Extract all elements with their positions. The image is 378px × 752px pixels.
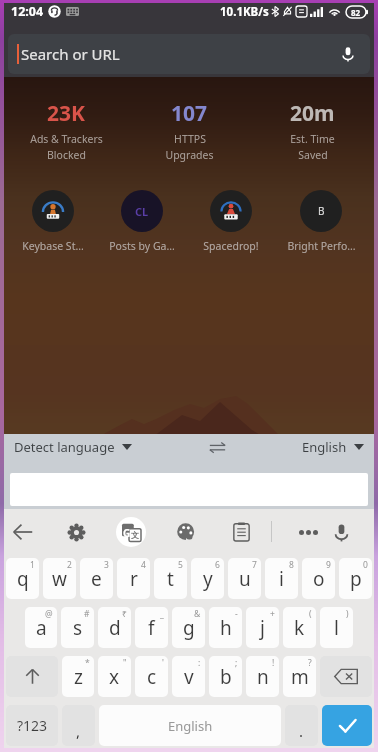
button[interactable]: s	[61, 607, 94, 648]
button[interactable]: b	[209, 656, 242, 697]
staticText: 107	[171, 99, 208, 128]
staticText: English	[168, 717, 213, 735]
staticText: t	[167, 566, 174, 592]
staticText: l	[334, 615, 339, 641]
button[interactable]: g	[172, 607, 205, 648]
button[interactable]: Clipboard	[221, 512, 261, 552]
button[interactable]: CL	[97, 190, 186, 253]
staticText: 2	[67, 559, 72, 571]
button[interactable]: j	[246, 607, 279, 648]
staticText: )	[346, 608, 349, 620]
staticText: #	[84, 608, 90, 620]
button[interactable]: Translate	[116, 517, 146, 547]
staticText: 12:04	[11, 3, 44, 20]
staticText: ?123	[17, 716, 48, 735]
button[interactable]: 107	[128, 99, 251, 162]
button[interactable]: t	[154, 558, 187, 599]
button[interactable]: Settings	[56, 512, 96, 552]
staticText: q	[17, 566, 29, 592]
staticText: 1	[30, 559, 35, 571]
button[interactable]: ,	[62, 705, 95, 746]
staticText: 文	[131, 530, 139, 540]
button[interactable]: ?123	[6, 705, 58, 746]
staticText: ?	[308, 657, 312, 669]
button[interactable]: a	[25, 607, 57, 648]
staticText: Keybase St…	[22, 239, 84, 253]
staticText: h	[220, 615, 232, 641]
button[interactable]: p	[339, 558, 372, 599]
button[interactable]: English	[99, 705, 281, 746]
button[interactable]: r	[117, 558, 150, 599]
button[interactable]: English	[302, 438, 364, 456]
button[interactable]: w	[43, 558, 76, 599]
button[interactable]: q	[6, 558, 39, 599]
button[interactable]: Backspace	[320, 656, 372, 697]
staticText: @	[45, 608, 53, 620]
staticText: English	[302, 438, 347, 456]
staticText: o	[313, 566, 325, 592]
button[interactable]: k	[283, 607, 316, 648]
staticText: (	[309, 608, 312, 620]
button[interactable]: l	[320, 607, 353, 648]
staticText: Search or URL	[21, 44, 120, 64]
button[interactable]: u	[228, 558, 261, 599]
button[interactable]: .	[285, 705, 318, 746]
button[interactable]: v	[172, 656, 205, 697]
button[interactable]: x	[98, 656, 131, 697]
button[interactable]: Shift	[6, 656, 58, 697]
button[interactable]: f	[135, 607, 168, 648]
button[interactable]: Back	[3, 512, 43, 552]
button[interactable]: y	[191, 558, 224, 599]
button[interactable]: d	[98, 607, 131, 648]
button[interactable]: Voice search	[330, 36, 366, 72]
button[interactable]: i	[265, 558, 298, 599]
staticText: m	[291, 664, 309, 690]
button[interactable]: Swap languages	[205, 435, 229, 459]
staticText: Est. Time	[290, 132, 335, 146]
button[interactable]: Search or URL	[8, 34, 370, 74]
button[interactable]: More options	[288, 512, 328, 552]
staticText: 3	[104, 559, 109, 571]
button[interactable]: Enter	[322, 705, 372, 746]
staticText: Ads & Trackers	[30, 132, 103, 146]
staticText: HTTPS	[174, 132, 206, 146]
staticText: ₹	[122, 608, 127, 620]
staticText: r	[130, 566, 138, 592]
button[interactable]: Theme	[166, 512, 206, 552]
staticText: 4	[141, 559, 146, 571]
staticText: u	[239, 566, 251, 592]
button[interactable]: 23K	[4, 99, 128, 162]
staticText: f	[148, 615, 155, 641]
staticText: w	[52, 566, 67, 592]
staticText: 0	[363, 559, 368, 571]
button[interactable]: Spacedrop!	[186, 190, 276, 253]
button[interactable]: B	[276, 190, 366, 253]
staticText: b	[220, 664, 232, 690]
button[interactable]: e	[80, 558, 113, 599]
staticText: Posts by Ga…	[109, 239, 175, 253]
staticText: +	[270, 608, 275, 620]
button[interactable]: Keybase St…	[8, 190, 97, 253]
button[interactable]: z	[62, 656, 94, 697]
button[interactable]: 20m	[251, 99, 374, 162]
staticText: Saved	[298, 148, 328, 162]
button[interactable]: c	[135, 656, 168, 697]
button[interactable]: Voice input	[321, 512, 361, 552]
staticText: i	[279, 566, 284, 592]
staticText: 6	[215, 559, 220, 571]
staticText: Blocked	[47, 148, 86, 162]
staticText: k	[294, 615, 305, 641]
staticText: _	[160, 608, 164, 620]
button[interactable]: Detect language	[14, 438, 132, 456]
button[interactable]: m	[283, 656, 316, 697]
button[interactable]: n	[246, 656, 279, 697]
button[interactable]: o	[302, 558, 335, 599]
button[interactable]: h	[209, 607, 242, 648]
staticText: -	[235, 608, 238, 620]
staticText: 82	[351, 7, 361, 18]
staticText: "	[123, 657, 127, 669]
staticText: CL	[135, 204, 149, 219]
staticText: 23K	[47, 99, 85, 128]
staticText: &	[194, 608, 201, 620]
